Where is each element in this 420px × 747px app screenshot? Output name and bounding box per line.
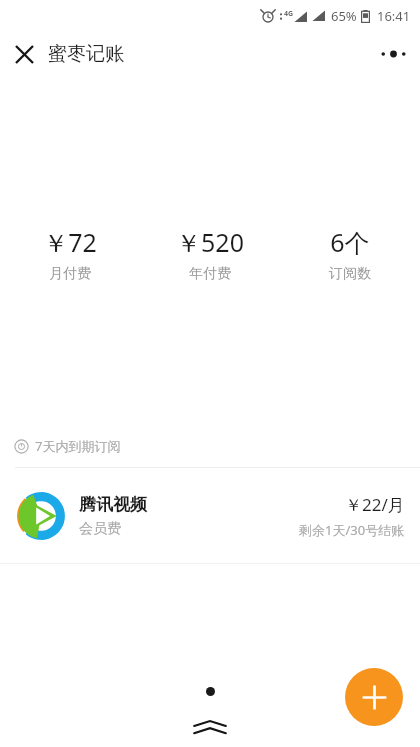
staticText: 剩余1天/30号结账	[299, 521, 405, 539]
button[interactable]: Add subscription	[345, 668, 403, 726]
staticText: 月付费	[49, 265, 91, 283]
staticText: 65%	[331, 7, 357, 25]
staticText: ￥520	[176, 225, 244, 259]
staticText: 会员费	[79, 520, 121, 538]
button[interactable]: ￥520	[140, 225, 280, 283]
staticText: 年付费	[189, 265, 231, 283]
button[interactable]: Close	[3, 33, 45, 75]
button[interactable]: ￥72	[0, 225, 140, 283]
staticText: 7天内到期订阅	[35, 437, 121, 455]
staticText: 16:41	[377, 7, 411, 25]
staticText: 蜜枣记账	[48, 42, 124, 66]
staticText: 订阅数	[329, 265, 371, 283]
staticText: 4G	[284, 9, 294, 19]
button[interactable]: 腾讯视频	[0, 468, 420, 563]
button[interactable]: 6个	[280, 225, 420, 283]
staticText: 腾讯视频	[79, 494, 147, 515]
button[interactable]: More options	[371, 32, 415, 76]
staticText: ￥72	[43, 225, 97, 259]
staticText: ￥22/月	[345, 493, 405, 516]
staticText: 6个	[330, 225, 370, 259]
